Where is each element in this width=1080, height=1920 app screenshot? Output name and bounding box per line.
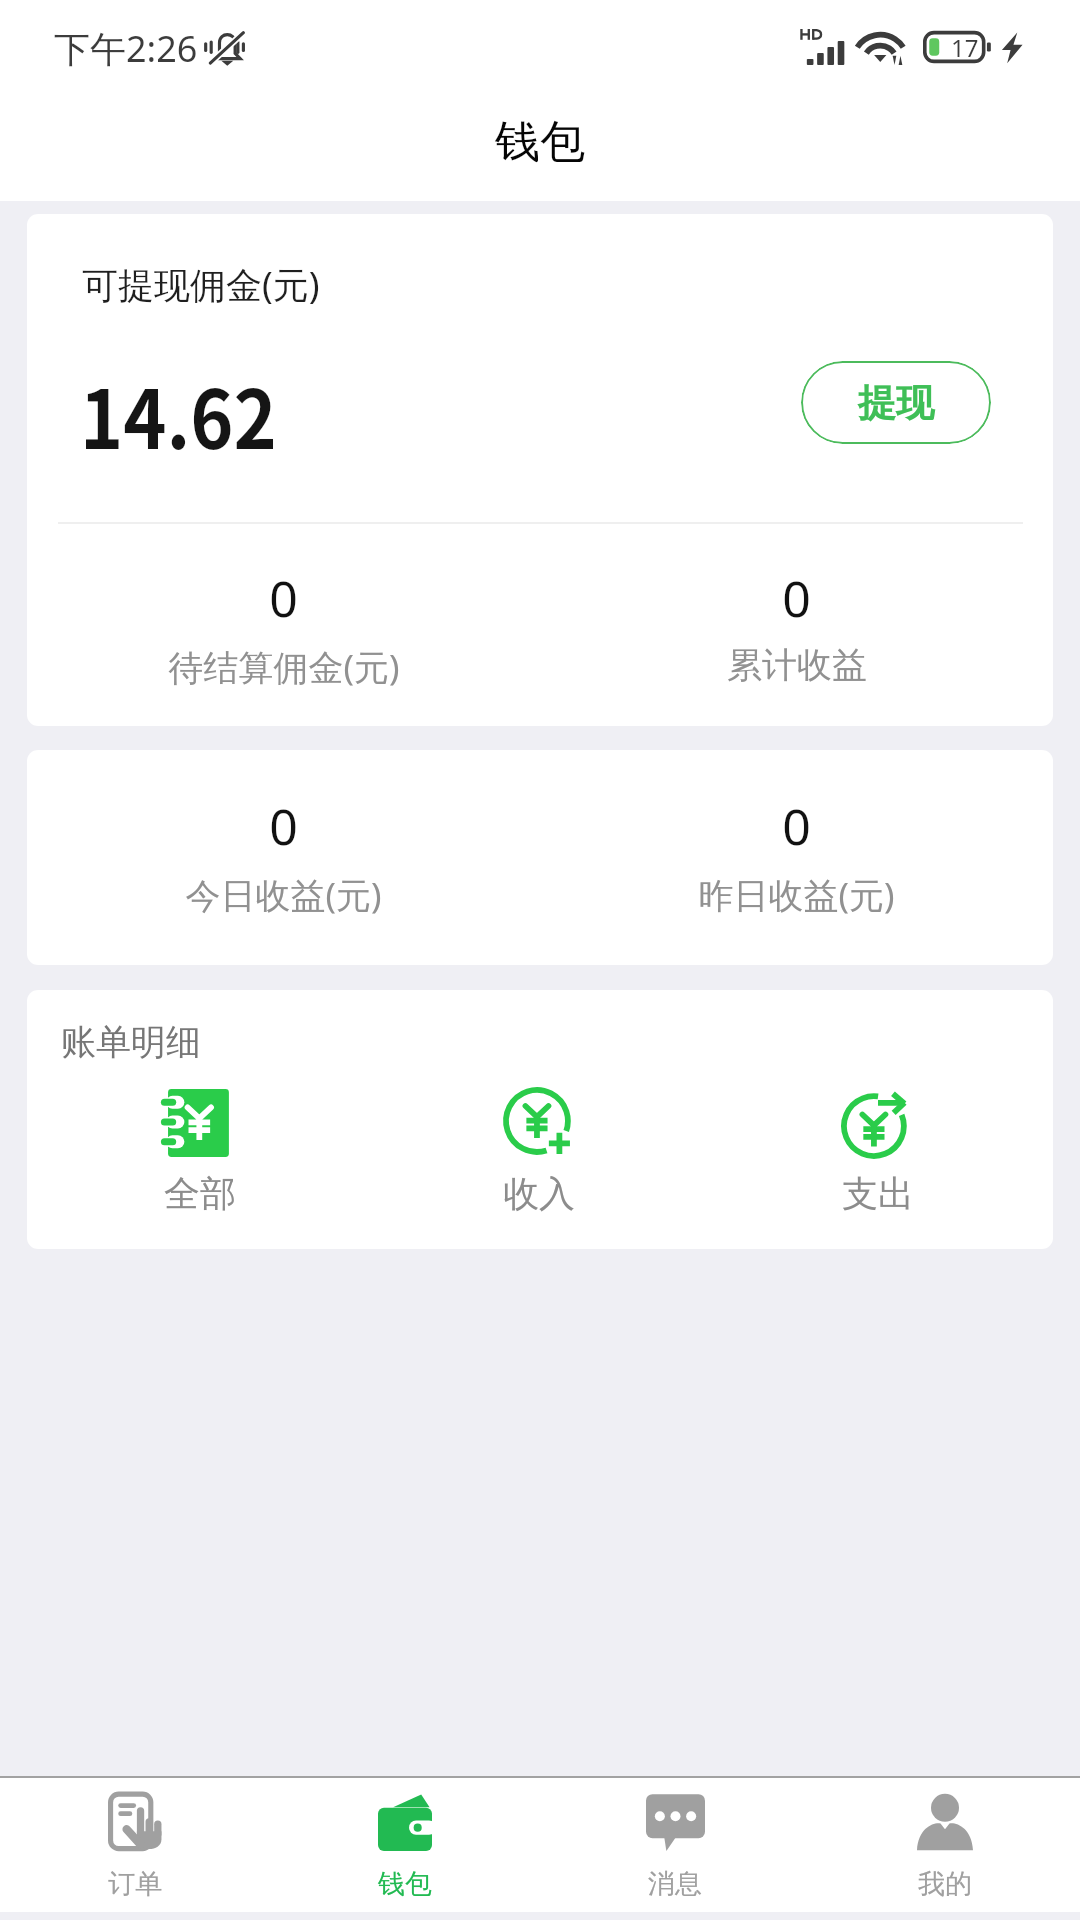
staticText: 17	[951, 31, 979, 64]
button[interactable]: 收入	[369, 1089, 708, 1216]
staticText: 消息	[648, 1867, 702, 1901]
staticText: 账单明细	[61, 1020, 201, 1064]
staticText: 今日收益(元)	[185, 871, 382, 919]
staticText: 0	[269, 792, 298, 860]
button[interactable]: 提现	[801, 361, 991, 444]
staticText: 我的	[918, 1867, 972, 1901]
staticText: 0	[782, 564, 811, 632]
button[interactable]: 钱包	[270, 1778, 540, 1912]
staticText: 待结算佣金(元)	[168, 643, 400, 691]
staticText: 累计收益	[727, 643, 867, 687]
staticText: 昨日收益(元)	[698, 871, 895, 919]
staticText: 全部	[164, 1171, 236, 1216]
staticText: 14.62	[80, 355, 277, 472]
staticText: 订单	[108, 1867, 162, 1901]
button[interactable]: 消息	[540, 1778, 810, 1912]
staticText: 0	[269, 564, 298, 632]
staticText: 可提现佣金(元)	[82, 260, 320, 309]
staticText: 提现	[858, 379, 934, 427]
button[interactable]: 支出	[708, 1089, 1047, 1216]
button[interactable]: 我的	[810, 1778, 1080, 1912]
staticText: 支出	[842, 1171, 914, 1216]
staticText: 收入	[503, 1171, 575, 1216]
staticText: 0	[782, 792, 811, 860]
button[interactable]: 全部	[31, 1089, 369, 1216]
staticText: 下午2:26	[54, 24, 198, 73]
staticText: 钱包	[378, 1867, 432, 1901]
button[interactable]: 订单	[0, 1778, 270, 1912]
staticText: 钱包	[495, 114, 585, 171]
